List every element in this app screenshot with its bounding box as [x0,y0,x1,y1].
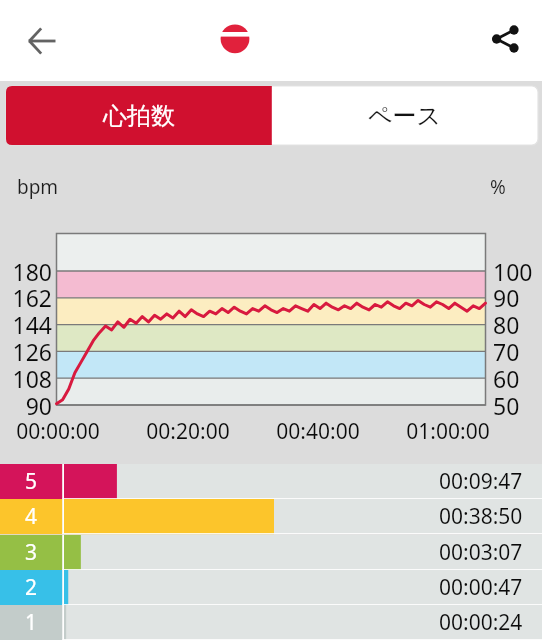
staticText: 00:40:00 [263,417,373,446]
button[interactable]: Share [477,11,533,67]
staticText: 00:20:00 [133,417,243,446]
button[interactable]: 1 [0,605,542,640]
staticText: 162 [6,282,52,313]
staticText: 1 [25,608,38,637]
staticText: 3 [25,538,38,567]
staticText: 50 [493,390,520,421]
button[interactable]: 4 [0,499,542,534]
staticText: 00:38:50 [439,502,523,531]
button[interactable]: 心拍数 [6,86,272,145]
staticText: 108 [6,363,52,394]
button[interactable]: 3 [0,535,542,570]
staticText: 4 [25,502,38,531]
staticText: 01:00:00 [393,417,503,446]
button[interactable]: Back [14,13,70,69]
staticText: 心拍数 [103,101,175,131]
button[interactable]: 5 [0,464,542,499]
staticText: 90 [493,282,520,313]
staticText: 5 [25,467,38,496]
staticText: 00:00:24 [439,608,523,637]
staticText: 180 [6,256,52,287]
staticText: 90 [6,390,52,421]
staticText: 70 [493,336,520,367]
staticText: 126 [6,336,52,367]
button[interactable]: 2 [0,570,542,605]
staticText: ペース [368,101,442,131]
staticText: 2 [25,573,38,602]
staticText: 80 [493,309,520,340]
staticText: 100 [493,256,533,287]
staticText: 00:03:07 [439,538,523,567]
staticText: 144 [6,309,52,340]
staticText: 00:00:47 [439,573,523,602]
staticText: bpm [17,174,59,200]
staticText: 00:00:00 [3,417,113,446]
staticText: 60 [493,363,520,394]
staticText: 00:09:47 [439,467,523,496]
button[interactable]: ペース [272,86,538,145]
staticText: % [490,174,506,200]
